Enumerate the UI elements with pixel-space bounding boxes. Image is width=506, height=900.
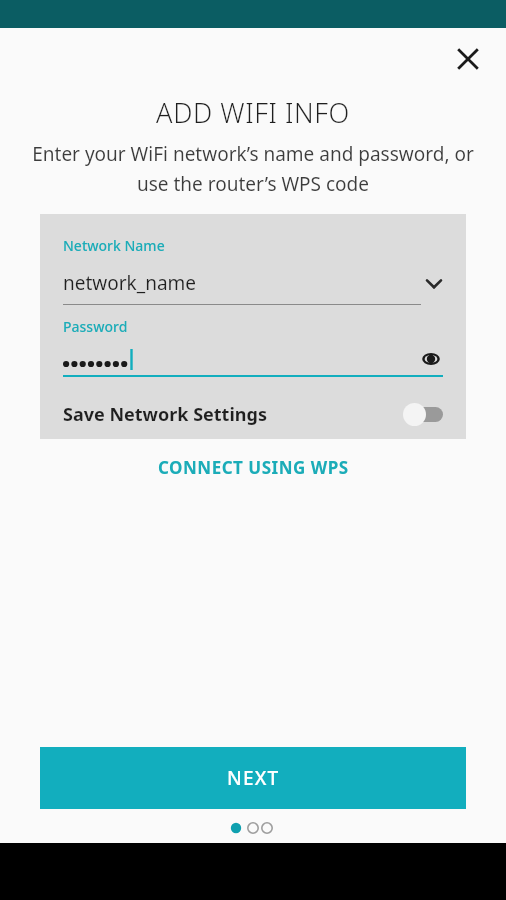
button[interactable]: NEXT [40,747,466,809]
staticText: Network Name [63,236,165,255]
staticText: Save Network Settings [63,402,403,427]
button[interactable]: CONNECT USING WPS [142,450,365,485]
staticText: Enter your WiFi network’s name and passw… [32,141,474,196]
other: Show networks [425,274,443,292]
staticText: CONNECT USING WPS [158,456,349,479]
button[interactable]: Show password [419,348,443,370]
staticText: network_name [63,270,425,296]
staticText: Password [63,317,128,336]
button[interactable]: Save Network Settings [63,397,443,431]
staticText: ADD WIFI INFO [156,94,350,131]
staticText: NEXT [227,765,280,791]
button[interactable]: network_name [63,270,443,296]
button[interactable]: Close [442,33,494,85]
